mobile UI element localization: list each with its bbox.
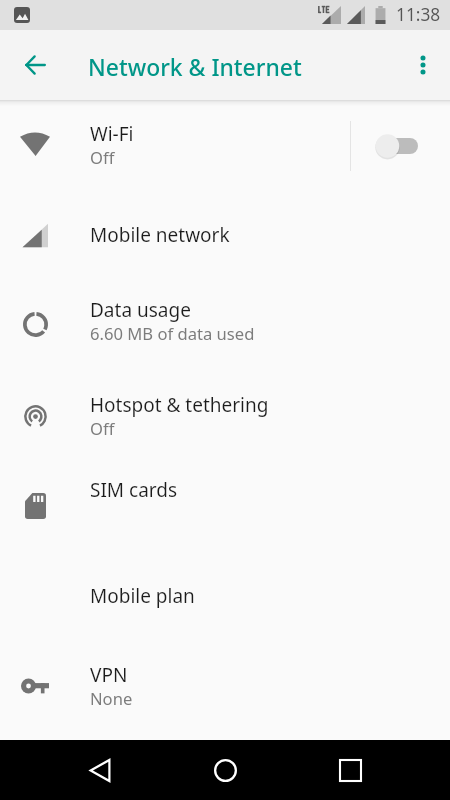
staticText: Mobile plan bbox=[90, 583, 195, 609]
button[interactable]: SIM cards bbox=[0, 461, 450, 541]
button[interactable]: Mobile network bbox=[0, 191, 450, 280]
button[interactable]: Home bbox=[195, 740, 255, 800]
staticText: None bbox=[90, 687, 133, 710]
staticText: Mobile network bbox=[90, 222, 230, 248]
button[interactable]: Navigate up bbox=[10, 41, 58, 89]
button[interactable]: Data usage bbox=[0, 280, 450, 368]
button[interactable]: Back bbox=[70, 740, 130, 800]
button[interactable]: Hotspot & tethering bbox=[0, 368, 450, 461]
staticText: Off bbox=[90, 417, 115, 440]
staticText: 11:38 bbox=[396, 3, 441, 27]
staticText: SIM cards bbox=[90, 477, 178, 503]
staticText: Data usage bbox=[90, 297, 191, 323]
button[interactable]: More options bbox=[399, 41, 447, 89]
button[interactable]: Wi-Fi on or off bbox=[365, 115, 427, 177]
button[interactable]: Wi-Fi bbox=[0, 100, 450, 191]
staticText: Off bbox=[90, 146, 115, 169]
staticText: 6.60 MB of data used bbox=[90, 322, 255, 345]
staticText: Network & Internet bbox=[88, 52, 302, 83]
staticText: Hotspot & tethering bbox=[90, 392, 269, 418]
button[interactable]: VPN bbox=[0, 640, 450, 732]
button[interactable]: Mobile plan bbox=[0, 555, 450, 637]
button[interactable]: Recent apps bbox=[320, 740, 380, 800]
staticText: Wi-Fi bbox=[90, 121, 134, 147]
staticText: VPN bbox=[90, 662, 128, 688]
